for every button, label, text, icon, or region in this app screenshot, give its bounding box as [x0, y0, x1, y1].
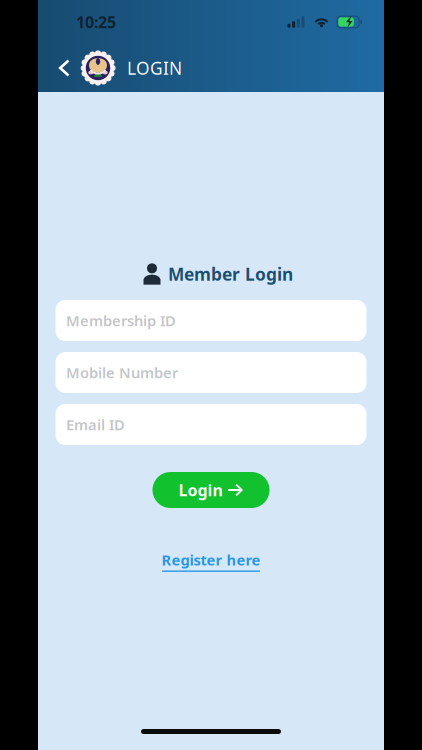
staticText: Mobile Number — [66, 363, 178, 382]
staticText: Member Login — [168, 262, 293, 285]
staticText: Register here — [161, 550, 260, 569]
button[interactable]: Email ID — [55, 404, 366, 445]
button[interactable]: Login — [152, 472, 269, 508]
button[interactable]: Back — [49, 51, 79, 85]
button[interactable]: Membership ID — [55, 300, 366, 341]
button[interactable]: Mobile Number — [55, 352, 366, 393]
staticText: Email ID — [66, 415, 125, 434]
button[interactable]: Register here — [161, 550, 260, 572]
staticText: LOGIN — [127, 56, 182, 79]
staticText: Membership ID — [66, 311, 176, 330]
staticText: Login — [178, 479, 222, 501]
staticText: 10:25 — [76, 11, 116, 33]
